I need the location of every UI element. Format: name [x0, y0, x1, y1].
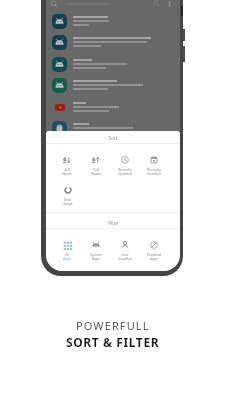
- button[interactable]: Data Usage: [53, 185, 82, 207]
- staticText: System Apps: [90, 252, 102, 261]
- button[interactable]: Recently Installed: [139, 155, 168, 177]
- button[interactable]: Recently Updated: [110, 155, 139, 177]
- button[interactable]: Search apps: [153, 0, 160, 7]
- staticText: Sort: [46, 135, 180, 141]
- button[interactable]: Search: [50, 0, 58, 8]
- button[interactable]: Z-A Name: [81, 155, 110, 177]
- button[interactable]: All Apps: [53, 240, 81, 262]
- staticText: User Installed: [118, 252, 132, 261]
- staticText: POWERFULL: [76, 318, 150, 333]
- button[interactable]: More options: [168, 0, 171, 8]
- button[interactable]: A-Z Name: [53, 155, 81, 177]
- staticText: Data Usage: [62, 197, 73, 206]
- staticText: Recently Installed: [147, 167, 161, 176]
- button[interactable]: User Installed: [110, 240, 139, 262]
- staticText: All Apps: [63, 252, 71, 261]
- staticText: Z-A Name: [91, 167, 101, 176]
- staticText: Disabled Apps: [147, 252, 161, 261]
- staticText: Filter: [46, 220, 180, 226]
- staticText: Recently Updated: [118, 167, 132, 176]
- button[interactable]: Disabled Apps: [139, 240, 168, 262]
- staticText: A-Z Name: [62, 167, 72, 176]
- staticText: SORT & FILTER: [66, 334, 160, 350]
- button[interactable]: System Apps: [81, 240, 110, 262]
